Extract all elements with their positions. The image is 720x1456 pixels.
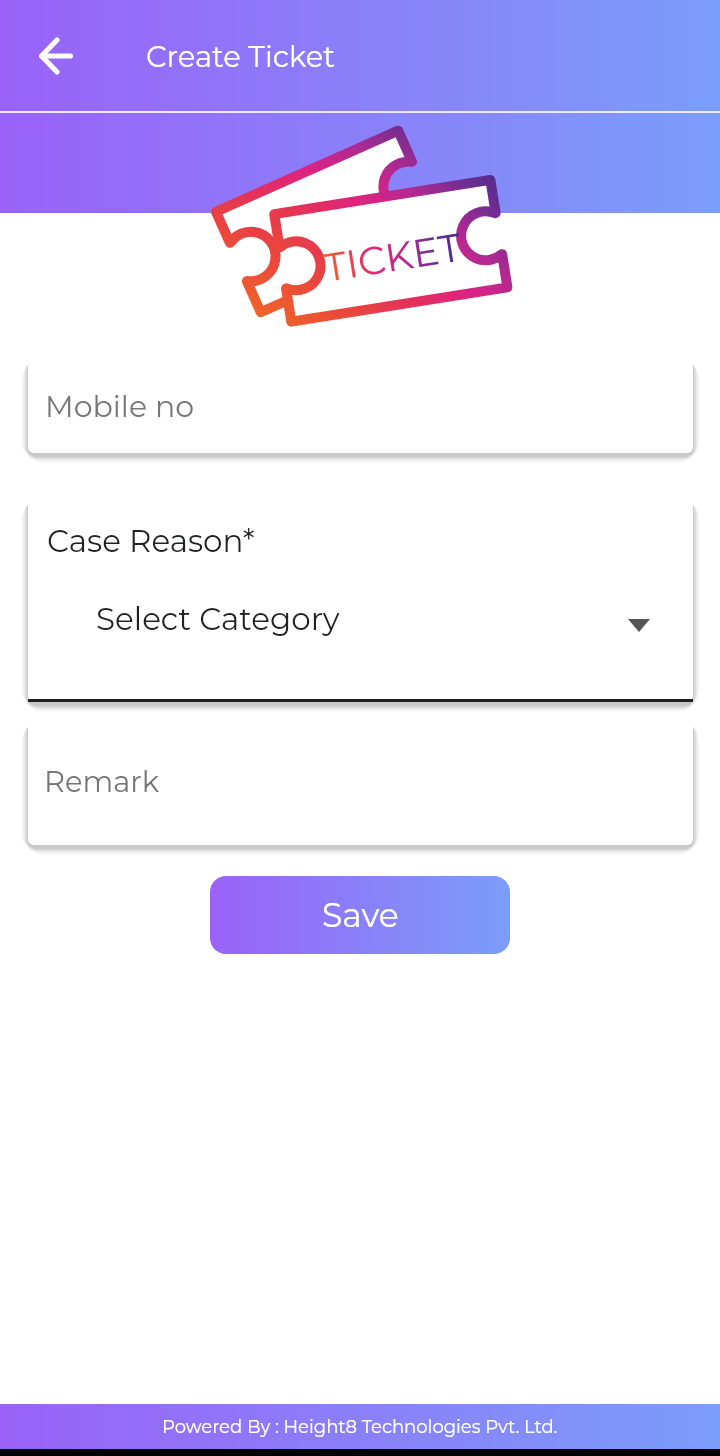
staticText: Create Ticket xyxy=(146,39,335,74)
staticText: Case Reason* xyxy=(47,522,255,560)
button[interactable]: Save xyxy=(210,876,510,954)
staticText: Powered By : Height8 Technologies Pvt. L… xyxy=(162,1416,558,1438)
staticText: Save xyxy=(322,895,399,935)
staticText: Mobile no xyxy=(45,388,195,425)
staticText: Remark xyxy=(44,764,160,799)
button[interactable] xyxy=(28,719,693,845)
button[interactable]: Back xyxy=(0,0,112,112)
button[interactable] xyxy=(28,357,693,453)
button[interactable] xyxy=(28,497,693,702)
staticText: Select Category xyxy=(96,600,340,638)
